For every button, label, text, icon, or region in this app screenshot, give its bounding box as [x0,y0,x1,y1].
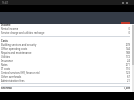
staticText: Other overheads [1,75,118,78]
staticText [118,23,130,26]
staticText: 1,398 [118,86,130,89]
staticText: 110 [118,67,130,70]
staticText: Costs [1,39,118,42]
button[interactable]: Rates [1,63,130,67]
button[interactable]: Shortfall [1,86,130,90]
button[interactable]: Other overheads [1,75,130,79]
staticText: 271 [118,63,130,66]
staticText: Insurance [1,59,118,62]
button[interactable]: Building services and security [1,43,130,47]
staticText: Office operating costs [1,47,118,50]
staticText: 67 [118,75,130,78]
staticText: 172 [118,55,130,58]
staticText: 188 [118,51,130,54]
staticText: 21 [118,79,130,82]
staticText: 9:41 [2,1,9,5]
staticText: Utilities [1,55,118,58]
staticText: 123 [118,71,130,74]
button[interactable]: Rental income [1,27,130,31]
button[interactable]: Utilities [1,55,130,59]
staticText: Rental income [1,27,118,30]
staticText: IT costs [1,67,118,70]
button[interactable]: Insurance [1,59,130,63]
staticText: Administration fees [1,79,118,82]
staticText: Rates [1,63,118,66]
button[interactable]: IT costs [1,67,130,71]
staticText: Repairs and maintenance [1,51,118,54]
staticText: Building services and security [1,43,118,46]
button[interactable]: Service charge and utilities recharge [1,31,130,35]
staticText: 278 [118,43,130,46]
staticText: 0 [118,27,130,30]
staticText: 144 [118,47,130,50]
button[interactable]: Administration fees [1,79,130,83]
staticText: Service charge and utilities recharge [1,31,118,34]
button[interactable]: Costs [1,39,130,43]
staticText: Central services (HR, finance etc) [1,71,118,74]
staticText: 24 [118,59,130,62]
staticText: Shortfall [1,86,118,89]
button[interactable]: Office operating costs [1,47,130,51]
button[interactable]: Income [1,23,130,27]
staticText: Income [1,23,118,26]
button[interactable]: Repairs and maintenance [1,51,130,55]
button[interactable]: Central services (HR, finance etc) [1,71,130,75]
staticText: 0 [118,31,130,34]
